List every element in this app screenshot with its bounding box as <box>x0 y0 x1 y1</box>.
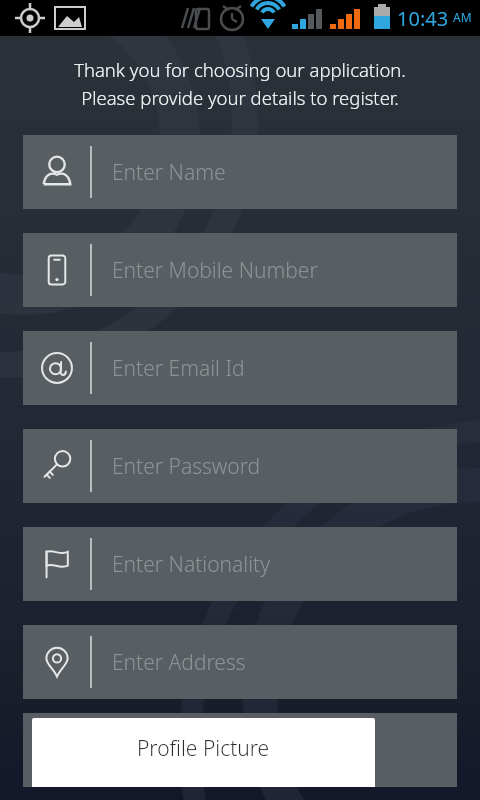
staticText: Enter Address <box>112 648 246 677</box>
staticText: Enter Nationality <box>112 550 271 579</box>
staticText: Enter Name <box>112 158 226 187</box>
staticText: Profile Picture <box>137 734 270 763</box>
staticText: AM <box>453 9 472 25</box>
staticText: Enter Mobile Number <box>112 256 318 285</box>
button[interactable]: Enter Mobile Number <box>23 233 457 307</box>
staticText: Enter Email Id <box>112 354 245 383</box>
button[interactable]: Enter Password <box>23 429 457 503</box>
staticText: 10:43 <box>397 5 449 32</box>
staticText: Enter Password <box>112 452 261 481</box>
button[interactable]: Profile Picture <box>23 713 457 787</box>
button[interactable]: Enter Address <box>23 625 457 699</box>
button[interactable]: Enter Email Id <box>23 331 457 405</box>
staticText: Thank you for choosing our application. … <box>0 57 480 110</box>
button[interactable]: Enter Nationality <box>23 527 457 601</box>
button[interactable]: Enter Name <box>23 135 457 209</box>
